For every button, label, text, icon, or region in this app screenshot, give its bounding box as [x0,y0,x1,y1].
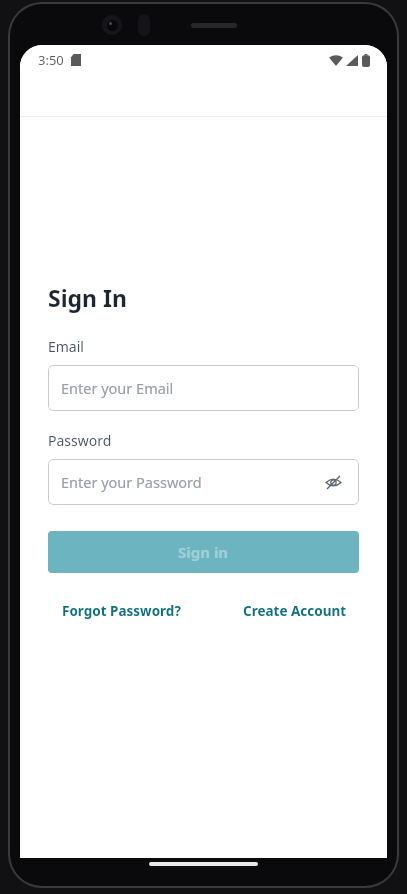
button[interactable]: Create Account [241,599,349,623]
staticText: Enter your Email [61,378,174,398]
staticText: Sign in [178,542,229,562]
button[interactable]: Sign in [48,531,359,573]
button[interactable]: Enter your Password [48,459,359,505]
staticText: Enter your Password [61,472,202,492]
staticText: Forgot Password? [62,602,181,620]
staticText: Email [48,337,84,356]
staticText: Sign In [48,282,127,313]
staticText: Create Account [243,602,347,620]
button[interactable]: Enter your Email [48,365,359,411]
staticText: Password [48,431,112,450]
staticText: 3:50 [38,51,64,69]
button[interactable]: Show password [320,469,346,495]
button[interactable]: Forgot Password? [60,599,183,623]
